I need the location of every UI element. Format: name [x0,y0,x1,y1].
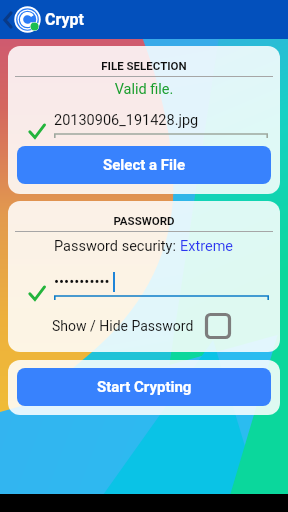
staticText: Start Crypting [97,378,192,396]
staticText: Show / Hide Password [52,318,194,334]
button[interactable]: Start Crypting [17,368,271,406]
staticText: Valid file. [8,81,280,98]
staticText: Password security: [54,238,180,255]
staticText: 20130906_191428.jpg [54,112,199,129]
staticText: ••••••••••• [54,273,110,291]
button[interactable]: Select a File [17,146,271,184]
button[interactable]: Show / Hide Password checkbox [205,313,231,339]
staticText: Select a File [103,156,186,174]
button[interactable]: Back [2,10,14,30]
button[interactable]: Show / Hide Password [52,313,236,339]
staticText: Extreme [180,238,234,255]
staticText: FILE SELECTION [8,59,280,72]
staticText: Crypt [45,10,84,29]
staticText: PASSWORD [8,214,280,227]
